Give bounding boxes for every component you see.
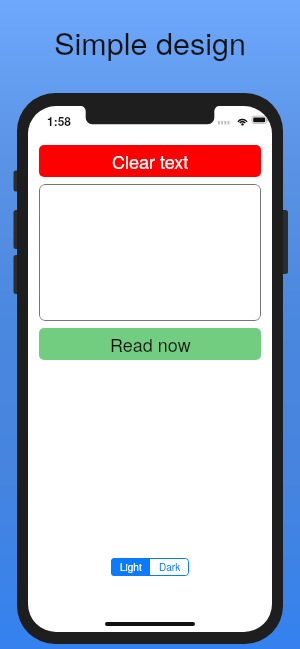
staticText: Clear text [112, 148, 189, 174]
staticText: Read now [110, 331, 191, 357]
staticText: 1:58 [47, 112, 72, 129]
staticText: Dark [159, 560, 181, 574]
button[interactable]: Read now [39, 328, 261, 360]
button[interactable]: Light [111, 558, 150, 576]
button[interactable]: Clear text [39, 145, 261, 177]
staticText: Simple design [54, 20, 246, 64]
button[interactable]: Dark [150, 558, 189, 576]
other: Status icons [218, 114, 263, 126]
staticText: Light [120, 560, 142, 574]
button[interactable] [39, 184, 261, 321]
